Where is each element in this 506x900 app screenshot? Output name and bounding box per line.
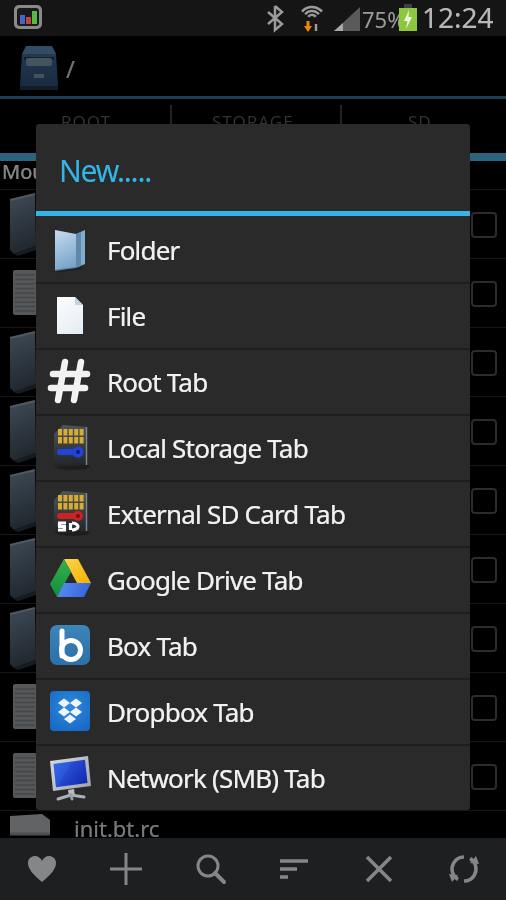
button[interactable]: Root Tab — [36, 348, 470, 414]
staticText: External SD Card Tab — [107, 496, 346, 531]
button[interactable]: External SD Card Tab — [36, 480, 470, 546]
button[interactable]: SD — [350, 107, 490, 135]
staticText: 75% — [362, 4, 406, 34]
staticText: STORAGE — [212, 110, 294, 133]
staticText: 12:24 — [422, 0, 494, 34]
staticText: Folder — [107, 232, 180, 267]
button[interactable] — [105, 848, 147, 890]
button[interactable] — [443, 848, 485, 890]
button[interactable]: Google Drive Tab — [36, 546, 470, 612]
button[interactable]: File — [36, 282, 470, 348]
button[interactable] — [190, 848, 232, 890]
button[interactable]: Local Storage Tab — [36, 414, 470, 480]
button[interactable]: Box Tab — [36, 612, 470, 678]
staticText: Dropbox Tab — [107, 694, 254, 729]
button[interactable]: ROOT — [16, 107, 156, 135]
staticText: Box Tab — [107, 628, 197, 663]
staticText: Network (SMB) Tab — [107, 760, 325, 795]
button[interactable] — [358, 848, 400, 890]
staticText: Google Drive Tab — [107, 562, 303, 597]
staticText: Mount R/W — [2, 158, 108, 185]
staticText: init.bt.rc — [74, 813, 160, 843]
staticText: File — [107, 298, 146, 333]
button[interactable] — [21, 848, 63, 890]
staticText: Local Storage Tab — [107, 430, 308, 465]
staticText: SD — [408, 110, 432, 133]
button[interactable]: STORAGE — [183, 107, 323, 135]
staticText: Root Tab — [107, 364, 208, 399]
button[interactable] — [274, 848, 316, 890]
button[interactable]: Folder — [36, 216, 470, 282]
button[interactable]: Network (SMB) Tab — [36, 744, 470, 810]
button[interactable]: Dropbox Tab — [36, 678, 470, 744]
staticText: ROOT — [61, 110, 112, 133]
staticText: / — [66, 52, 75, 85]
staticText: New..... — [59, 150, 152, 191]
